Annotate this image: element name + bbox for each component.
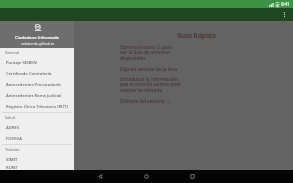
button[interactable]: FOSYGA xyxy=(0,133,74,144)
button[interactable]: Home xyxy=(141,171,152,182)
staticText: Puntaje SISBEN xyxy=(6,60,37,66)
staticText: ADRES xyxy=(6,125,20,131)
button[interactable]: Back xyxy=(95,171,106,182)
button[interactable]: Puntaje SISBEN xyxy=(0,57,74,68)
staticText: Antecedentes Rama Judicial xyxy=(6,93,62,99)
staticText: RUNT xyxy=(6,165,18,170)
staticText: Ciudadano Informado xyxy=(15,35,60,41)
button[interactable]: Certificado Contraloría xyxy=(0,68,74,79)
staticText: Tránsito xyxy=(5,147,20,152)
button[interactable]: SIMIT xyxy=(0,154,74,165)
button[interactable]: Antecedentes Procuraduría xyxy=(0,79,74,90)
staticText: Certificado Contraloría xyxy=(6,71,52,77)
staticText: General xyxy=(5,50,20,55)
staticText: Registro Único Tributario (RUT) xyxy=(6,104,68,110)
staticText: Introduzca la información que el servici… xyxy=(120,76,273,94)
button[interactable]: Ciudadano Informado xyxy=(0,21,74,48)
button[interactable]: Recent apps xyxy=(187,171,198,182)
button[interactable]: RUNT xyxy=(0,165,74,170)
staticText: Salud xyxy=(5,115,16,120)
staticText: solabordo.github.io xyxy=(21,41,55,46)
staticText: 9:41 xyxy=(281,1,290,7)
staticText: Oprima el icono ☰ para ver la lista de s… xyxy=(120,44,273,62)
staticText: Elija un servicio de la lista xyxy=(120,66,273,72)
button[interactable]: Registro Único Tributario (RUT) xyxy=(0,101,74,112)
staticText: Disfrute del servicio : ) xyxy=(120,98,273,104)
button[interactable]: ADRES xyxy=(0,122,74,133)
button[interactable]: More options xyxy=(278,8,291,21)
staticText: FOSYGA xyxy=(6,136,22,142)
staticText: Antecedentes Procuraduría xyxy=(6,82,61,88)
staticText: Guía Rápida xyxy=(120,31,273,40)
staticText: SIMIT xyxy=(6,157,18,163)
button[interactable]: Antecedentes Rama Judicial xyxy=(0,90,74,101)
